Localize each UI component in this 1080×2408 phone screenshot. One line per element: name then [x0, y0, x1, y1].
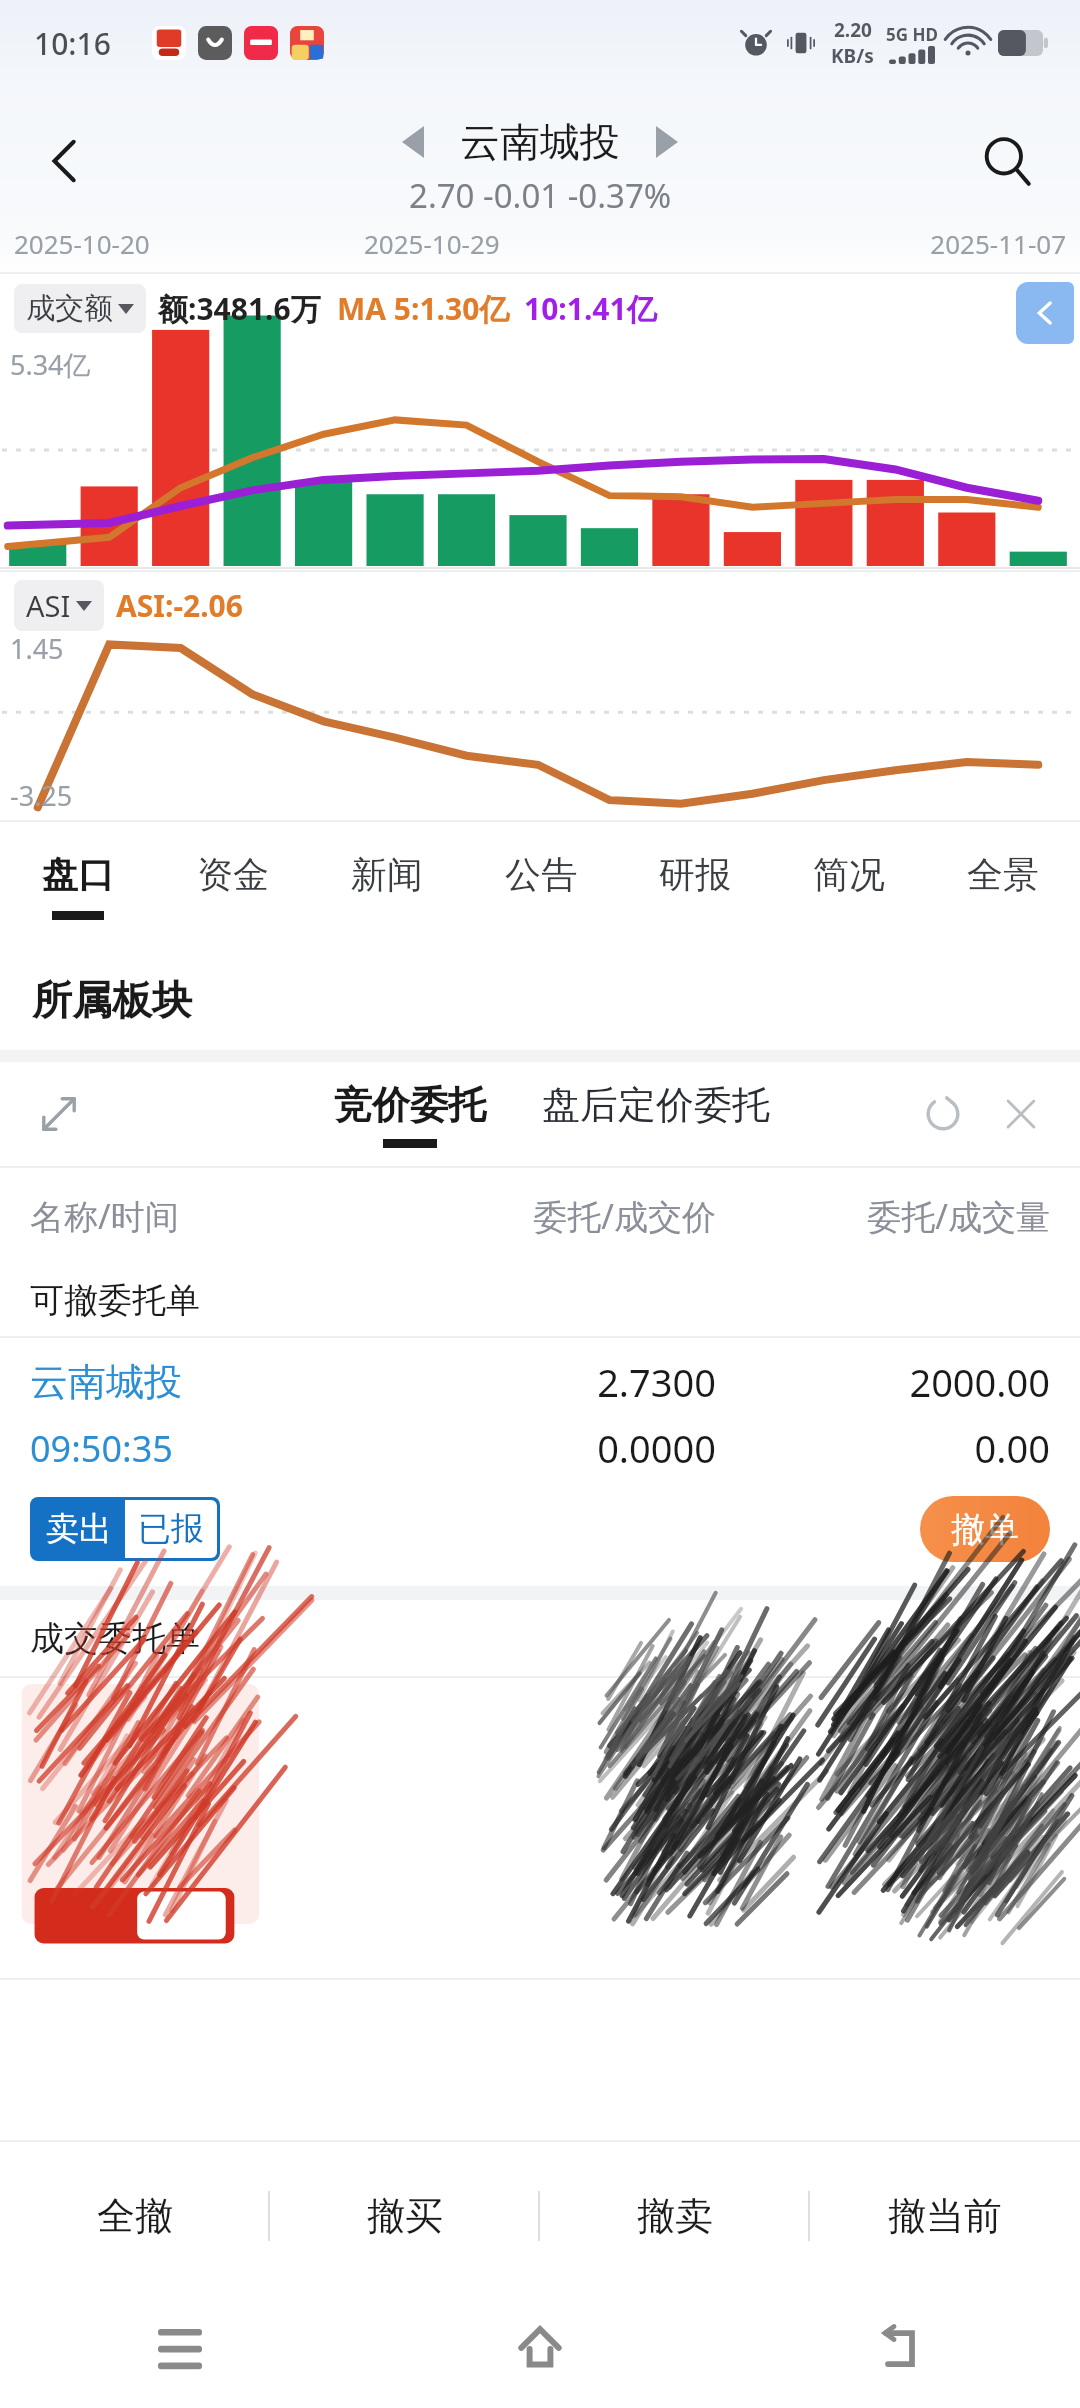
staticText: 10:16 — [34, 23, 111, 64]
staticText: ASI:-2.06 — [116, 585, 243, 626]
staticText: 研报 — [659, 852, 731, 897]
button[interactable]: Recent apps — [0, 2290, 360, 2408]
button[interactable]: 竞价委托 — [334, 1081, 486, 1148]
staticText: 委托/成交量 — [716, 1193, 1050, 1239]
staticText: 撤单 — [951, 1508, 1019, 1551]
staticText: 成交委托单 — [30, 1617, 200, 1660]
staticText: 成交额 — [26, 290, 113, 327]
staticText: 简况 — [813, 852, 885, 897]
staticText: 撤买 — [367, 2192, 443, 2240]
staticText: 2.70 -0.01 -0.37% — [409, 173, 672, 218]
staticText: 撤卖 — [637, 2192, 713, 2240]
button[interactable]: 简况 — [772, 822, 926, 950]
button[interactable]: 研报 — [618, 822, 772, 950]
button[interactable]: 云南城投 — [0, 1338, 1080, 1586]
staticText: 云南城投 — [30, 1358, 382, 1406]
button[interactable]: ASI — [14, 580, 104, 631]
button[interactable]: 撤当前 — [810, 2142, 1080, 2290]
staticText: 资金 — [197, 852, 269, 897]
staticText: 可撤委托单 — [30, 1279, 200, 1322]
button[interactable]: 撤单 — [920, 1496, 1050, 1562]
button[interactable]: 资金 — [155, 822, 310, 950]
button[interactable]: 公告 — [464, 822, 618, 950]
button[interactable]: Back — [14, 109, 118, 213]
staticText: MA 5:1.30亿 — [337, 288, 510, 329]
staticText: 2.20 — [834, 17, 872, 43]
staticText: 10:1.41亿 — [524, 288, 657, 329]
staticText: ASI — [26, 586, 71, 625]
staticText: 全景 — [967, 852, 1039, 897]
staticText: 公告 — [505, 852, 577, 897]
button[interactable]: 全景 — [926, 822, 1080, 950]
staticText: 新闻 — [351, 852, 423, 897]
button[interactable]: Previous page — [1016, 282, 1074, 344]
staticText: -3.25 — [10, 777, 73, 814]
button[interactable]: 云南城投 — [460, 117, 620, 167]
button[interactable]: 卖出 — [30, 1497, 220, 1561]
staticText: 已报 — [138, 1508, 204, 1550]
staticText: 5.34亿 — [10, 346, 91, 383]
staticText: 09:50:35 — [30, 1424, 382, 1473]
staticText: KB/s — [831, 43, 874, 69]
staticText: 0.00 — [716, 1422, 1050, 1474]
button[interactable]: Next stock — [638, 113, 696, 171]
staticText: 名称/时间 — [30, 1193, 382, 1239]
staticText: 2000.00 — [716, 1356, 1050, 1408]
staticText: 2.7300 — [382, 1356, 716, 1408]
button[interactable]: Expand — [24, 1079, 94, 1149]
button[interactable]: 新闻 — [310, 822, 464, 950]
button[interactable]: Close — [988, 1081, 1054, 1147]
staticText: 撤当前 — [888, 2192, 1002, 2240]
button[interactable]: Back — [720, 2290, 1080, 2408]
button[interactable]: Refresh — [910, 1081, 976, 1147]
button[interactable]: 撤买 — [270, 2142, 540, 2290]
button[interactable]: Home — [360, 2290, 720, 2408]
staticText: 2025-10-20 — [14, 226, 364, 261]
button[interactable]: Previous stock — [384, 113, 442, 171]
button[interactable]: 盘口 — [0, 822, 155, 950]
button[interactable]: 盘后定价委托 — [542, 1081, 770, 1148]
staticText: 0.0000 — [382, 1422, 716, 1474]
staticText: 2025-11-07 — [715, 226, 1066, 261]
staticText: 额:3481.6万 — [158, 288, 321, 329]
staticText: 全撤 — [97, 2192, 173, 2240]
staticText: 5G HD — [886, 23, 938, 46]
button[interactable]: 成交额 — [14, 284, 146, 333]
button[interactable]: 撤卖 — [540, 2142, 810, 2290]
staticText: 1.45 — [10, 630, 64, 667]
staticText: 盘口 — [42, 852, 114, 897]
button[interactable]: 全撤 — [0, 2142, 270, 2290]
staticText: 盘后定价委托 — [542, 1081, 770, 1129]
staticText: 委托/成交价 — [382, 1193, 716, 1239]
staticText: 竞价委托 — [334, 1081, 486, 1129]
button[interactable]: Search — [958, 111, 1058, 211]
staticText: 卖出 — [46, 1508, 112, 1550]
staticText: 2025-10-29 — [364, 226, 715, 261]
staticText: 所属板块 — [32, 975, 192, 1025]
